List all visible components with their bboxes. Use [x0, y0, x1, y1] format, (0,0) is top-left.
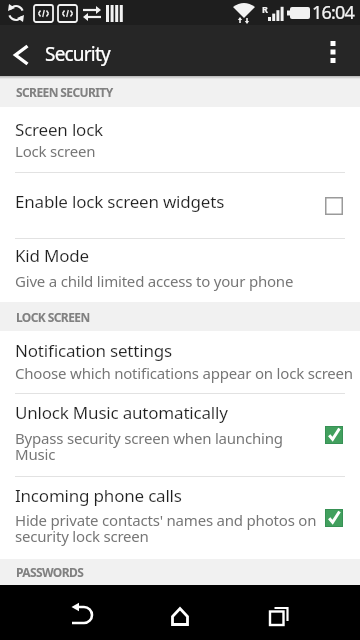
staticText: Notification settings	[15, 339, 172, 362]
staticText: Kid Mode	[15, 244, 89, 267]
staticText: Bypass security screen when launching Mu…	[15, 428, 283, 464]
staticText: Unlock Music automatically	[15, 401, 228, 424]
staticText: PASSWORDS	[16, 564, 84, 580]
button[interactable]: Kid Mode	[0, 239, 360, 302]
staticText: Screen lock	[15, 118, 103, 141]
button[interactable]	[320, 25, 360, 76]
staticText: R	[262, 3, 268, 15]
staticText: Lock screen	[15, 141, 96, 161]
button[interactable]: Unlock Music automatically	[0, 394, 360, 476]
staticText: SCREEN SECURITY	[16, 84, 113, 100]
staticText: Incoming phone calls	[15, 484, 182, 507]
button[interactable]	[0, 25, 42, 76]
button[interactable]	[158, 585, 202, 640]
staticText: Choose which notifications appear on loc…	[15, 363, 353, 383]
staticText: Enable lock screen widgets	[15, 190, 225, 213]
button[interactable]: Notification settings	[0, 331, 360, 393]
staticText: Give a child limited access to your phon…	[15, 271, 294, 291]
staticText: LOCK SCREEN	[16, 309, 90, 325]
staticText: Security	[45, 41, 110, 67]
button[interactable]: Screen lock	[0, 107, 360, 172]
staticText: Hide private contacts' names and photos …	[15, 510, 317, 546]
button[interactable]: Incoming phone calls	[0, 477, 360, 559]
button[interactable]	[256, 585, 300, 640]
staticText: 16:04	[312, 0, 355, 25]
button[interactable]	[59, 585, 103, 640]
button[interactable]: Enable lock screen widgets	[0, 173, 360, 238]
